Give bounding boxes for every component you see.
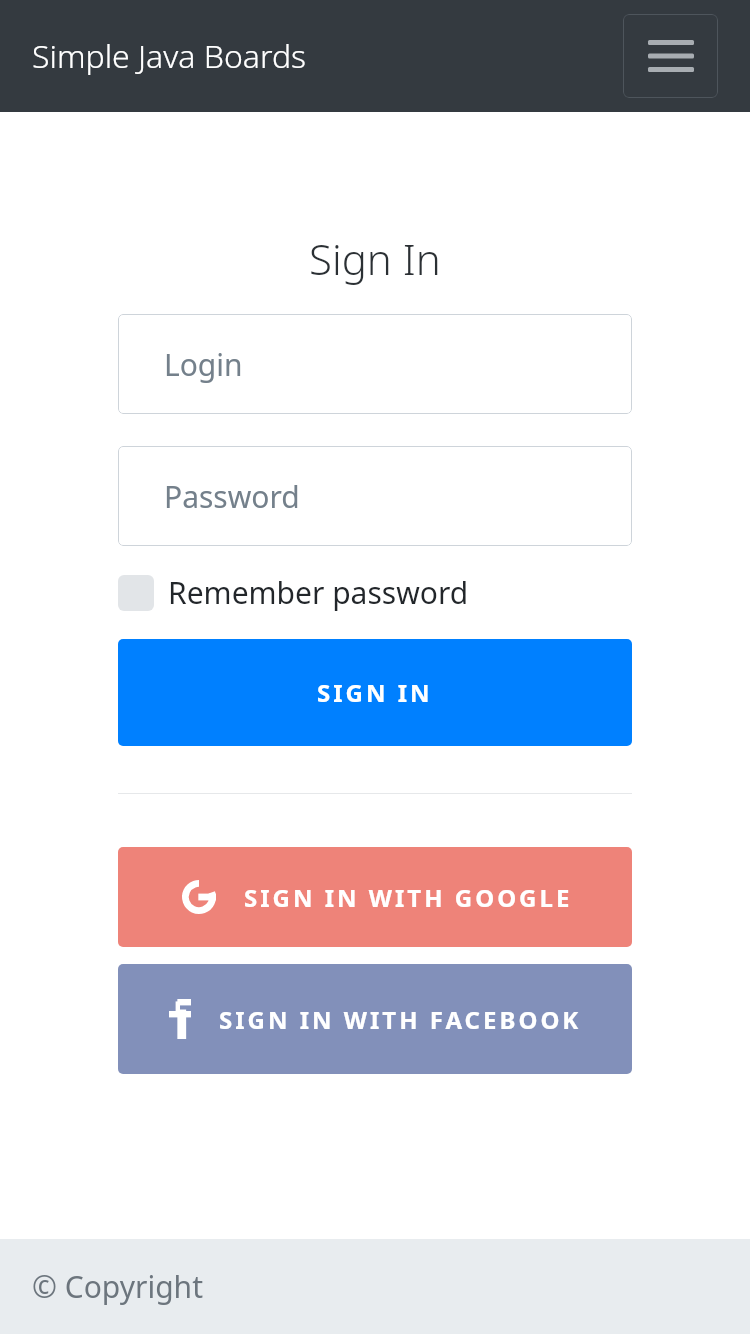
staticText: SIGN IN WITH FACEBOOK (219, 1003, 582, 1036)
button[interactable]: Login (118, 314, 632, 414)
button[interactable]: SIGN IN WITH FACEBOOK (118, 964, 632, 1074)
staticText: Remember password (168, 572, 469, 613)
staticText: Login (164, 344, 243, 385)
button[interactable]: SIGN IN WITH GOOGLE (118, 847, 632, 947)
staticText: SIGN IN (317, 676, 433, 709)
staticText: © Copyright (32, 1266, 203, 1307)
staticText: Sign In (309, 230, 441, 287)
staticText: Password (164, 476, 300, 517)
button[interactable]: SIGN IN (118, 639, 632, 746)
staticText: Simple Java Boards (32, 34, 307, 78)
button[interactable]: Menu (623, 14, 718, 98)
button[interactable]: Remember password (118, 572, 632, 613)
button[interactable]: Password (118, 446, 632, 546)
staticText: SIGN IN WITH GOOGLE (244, 881, 573, 914)
